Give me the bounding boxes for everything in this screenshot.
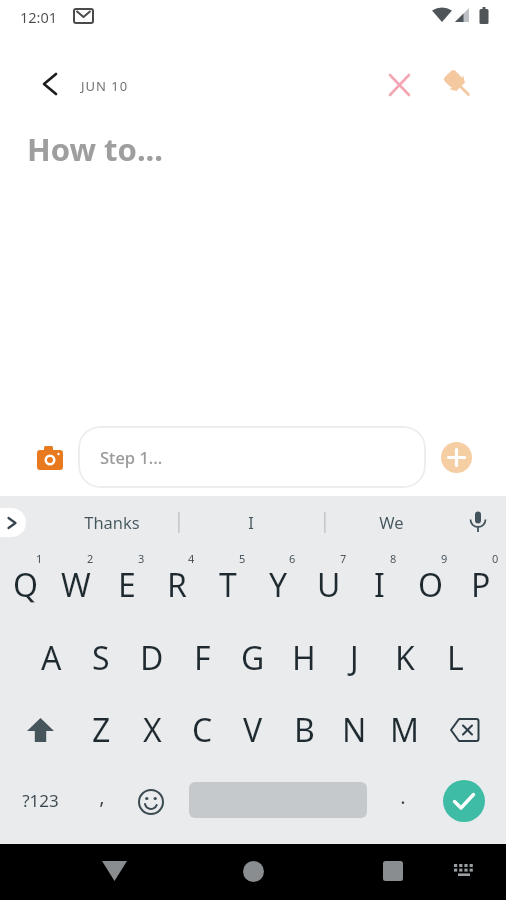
button[interactable]: C — [177, 704, 227, 756]
button[interactable] — [94, 851, 134, 891]
button[interactable] — [30, 438, 70, 478]
staticText: J — [350, 636, 359, 680]
staticText: 6 — [289, 551, 296, 566]
button[interactable]: , — [82, 771, 122, 821]
button[interactable]: U — [304, 559, 354, 611]
button[interactable]: I — [354, 559, 404, 611]
button[interactable]: ?123 — [5, 775, 75, 825]
button[interactable]: Z — [76, 704, 126, 756]
staticText: 9 — [441, 551, 448, 566]
staticText: JUN 10 — [81, 77, 129, 95]
button[interactable] — [233, 851, 273, 891]
button[interactable]: X — [127, 704, 177, 756]
staticText: 5 — [239, 551, 246, 566]
button[interactable]: M — [380, 704, 430, 756]
button[interactable]: V — [228, 704, 278, 756]
button[interactable]: B — [279, 704, 329, 756]
button[interactable] — [373, 851, 413, 891]
staticText: 1 — [36, 551, 43, 566]
button[interactable]: O — [405, 559, 455, 611]
staticText: M — [390, 708, 420, 752]
staticText: H — [292, 636, 316, 680]
staticText: 8 — [390, 551, 397, 566]
staticText: T — [219, 563, 237, 607]
button[interactable] — [30, 64, 70, 104]
staticText: O — [418, 563, 443, 607]
button[interactable]: T — [203, 559, 253, 611]
button[interactable] — [127, 778, 175, 826]
button[interactable] — [443, 780, 485, 822]
button[interactable]: Step 1... — [78, 426, 426, 488]
button[interactable] — [14, 704, 66, 756]
button[interactable]: Thanks — [52, 502, 172, 542]
staticText: 4 — [188, 551, 195, 566]
staticText: B — [294, 708, 315, 752]
staticText: Z — [92, 708, 111, 752]
staticText: Step 1... — [100, 446, 163, 468]
button[interactable]: We — [331, 502, 451, 542]
staticText: P — [471, 563, 491, 607]
button[interactable]: A — [26, 632, 76, 684]
button[interactable]: D — [127, 632, 177, 684]
button[interactable] — [440, 64, 484, 108]
button[interactable]: P — [456, 559, 506, 611]
button[interactable]: Q — [0, 559, 50, 611]
staticText: S — [92, 636, 110, 680]
staticText: K — [395, 636, 415, 680]
button[interactable]: G — [228, 632, 278, 684]
staticText: E — [118, 563, 136, 607]
staticText: D — [140, 636, 164, 680]
button[interactable]: Y — [253, 559, 303, 611]
staticText: C — [192, 708, 213, 752]
button[interactable] — [462, 506, 494, 538]
button[interactable]: . — [383, 771, 423, 821]
staticText: V — [243, 708, 263, 752]
button[interactable] — [378, 64, 420, 106]
staticText: R — [167, 563, 187, 607]
staticText: 7 — [340, 551, 347, 566]
staticText: Y — [269, 563, 288, 607]
button[interactable]: S — [76, 632, 126, 684]
staticText: We — [379, 511, 404, 533]
staticText: W — [61, 563, 91, 607]
staticText: F — [194, 636, 211, 680]
staticText: , — [99, 783, 105, 810]
button[interactable] — [439, 704, 491, 756]
button[interactable]: E — [102, 559, 152, 611]
staticText: 0 — [492, 551, 499, 566]
staticText: 12:01 — [20, 7, 58, 27]
staticText: Q — [13, 563, 38, 607]
button[interactable] — [448, 856, 480, 884]
staticText: G — [241, 636, 265, 680]
staticText: 3 — [138, 551, 145, 566]
button[interactable]: J — [329, 632, 379, 684]
staticText: I — [248, 511, 254, 533]
staticText: I — [374, 563, 385, 607]
staticText: How to... — [27, 128, 164, 170]
button[interactable]: N — [329, 704, 379, 756]
staticText: 2 — [87, 551, 94, 566]
button[interactable]: R — [152, 559, 202, 611]
staticText: ?123 — [22, 789, 59, 812]
button[interactable]: K — [380, 632, 430, 684]
staticText: U — [317, 563, 341, 607]
staticText: L — [447, 636, 464, 680]
button[interactable]: L — [430, 632, 480, 684]
button[interactable] — [441, 442, 472, 473]
staticText: Thanks — [84, 511, 140, 533]
button[interactable]: W — [51, 559, 101, 611]
staticText: N — [342, 708, 367, 752]
staticText: A — [41, 636, 62, 680]
button[interactable]: I — [191, 502, 311, 542]
button[interactable]: H — [279, 632, 329, 684]
staticText: . — [400, 783, 406, 810]
button[interactable] — [0, 508, 26, 537]
button[interactable]: F — [177, 632, 227, 684]
staticText: X — [143, 708, 162, 752]
